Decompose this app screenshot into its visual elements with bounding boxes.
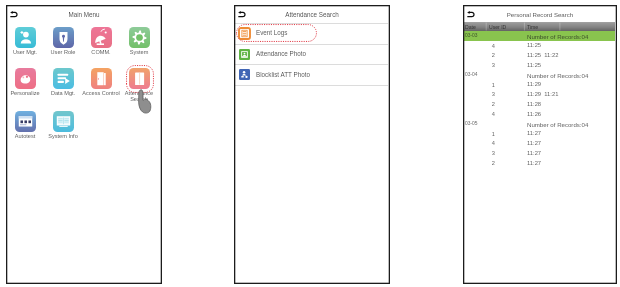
- staticText: 3: [483, 62, 495, 68]
- staticText: 11:29: [527, 81, 613, 87]
- button[interactable]: [235, 44, 388, 65]
- staticText: 11:25: [527, 62, 613, 68]
- staticText: Access Control: [82, 90, 120, 96]
- staticText: System: [120, 49, 158, 55]
- staticText: Number of Records:04: [527, 121, 613, 128]
- button[interactable]: Back: [10, 11, 18, 18]
- staticText: 2: [483, 160, 495, 166]
- staticText: 3: [483, 91, 495, 97]
- staticText: 1: [483, 131, 495, 137]
- staticText: User Role: [44, 49, 82, 55]
- staticText: 1: [483, 82, 495, 88]
- staticText: 11:27: [527, 140, 613, 146]
- staticText: Blocklist ATT Photo: [256, 71, 384, 78]
- staticText: 4: [483, 43, 495, 49]
- button[interactable]: [235, 23, 388, 44]
- button[interactable]: [6, 24, 44, 59]
- staticText: 11:27: [527, 160, 613, 166]
- staticText: 11:25 11:22: [527, 52, 613, 58]
- button[interactable]: [120, 24, 158, 59]
- staticText: Time: [527, 24, 559, 30]
- staticText: Number of Records:04: [527, 33, 613, 40]
- staticText: Personalize: [6, 90, 44, 96]
- staticText: 11:29 11:21: [527, 91, 613, 97]
- staticText: Number of Records:04: [527, 72, 613, 79]
- button[interactable]: [6, 65, 44, 100]
- button[interactable]: [44, 24, 82, 59]
- staticText: 4: [483, 111, 495, 117]
- staticText: 11:25: [527, 42, 613, 48]
- staticText: User Mgt.: [6, 49, 44, 55]
- staticText: Date: [465, 24, 489, 30]
- button[interactable]: [44, 108, 82, 143]
- staticText: 2: [483, 101, 495, 107]
- button[interactable]: [6, 108, 44, 143]
- staticText: 3: [483, 150, 495, 156]
- staticText: Attendance Search: [120, 90, 158, 102]
- staticText: User ID: [489, 24, 521, 30]
- staticText: Attendance Photo: [256, 50, 384, 57]
- staticText: 03-05: [465, 121, 489, 126]
- staticText: Autotest: [6, 133, 44, 139]
- staticText: Data Mgt.: [44, 90, 82, 96]
- staticText: 11:27: [527, 150, 613, 156]
- staticText: 11:28: [527, 101, 613, 107]
- staticText: Attendance Search: [234, 11, 390, 18]
- button[interactable]: Back: [238, 11, 246, 18]
- staticText: COMM.: [82, 49, 120, 55]
- staticText: 2: [483, 52, 495, 58]
- button[interactable]: [120, 65, 158, 100]
- staticText: 4: [483, 140, 495, 146]
- button[interactable]: [44, 65, 82, 100]
- button[interactable]: [235, 64, 388, 85]
- button[interactable]: [82, 24, 120, 59]
- staticText: 11:27: [527, 130, 613, 136]
- staticText: 03-04: [465, 72, 489, 77]
- staticText: Main Menu: [6, 11, 162, 18]
- staticText: 11:26: [527, 111, 613, 117]
- staticText: System Info: [44, 133, 82, 139]
- staticText: Personal Record Search: [463, 11, 617, 18]
- staticText: 03-03: [465, 33, 489, 38]
- button[interactable]: Back: [467, 11, 475, 18]
- staticText: Event Logs: [256, 29, 384, 36]
- button[interactable]: [82, 65, 120, 100]
